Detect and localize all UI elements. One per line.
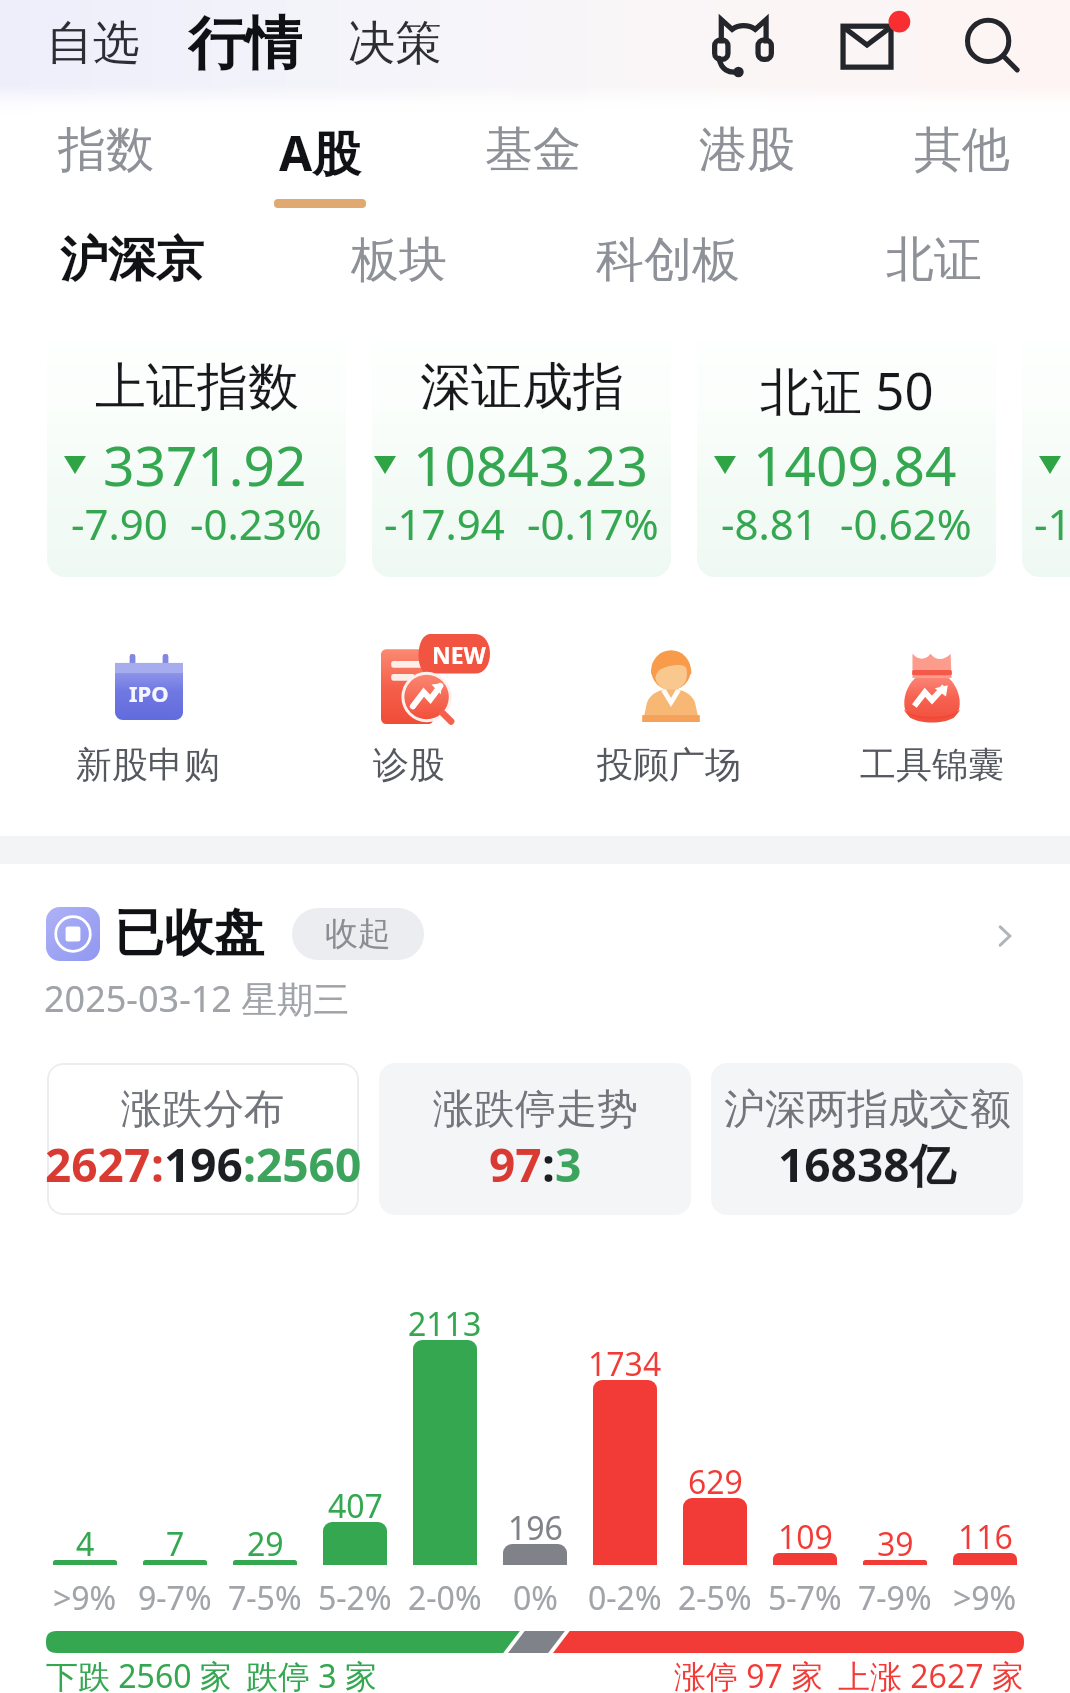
staticText: 2113	[408, 1302, 482, 1336]
button[interactable]	[47, 1063, 359, 1215]
button[interactable]: 板块	[314, 230, 484, 288]
staticText: 深证成指	[420, 355, 624, 419]
staticText: 5-7%	[768, 1576, 842, 1610]
staticText: 7-5%	[228, 1576, 302, 1610]
button[interactable]: 在线客服	[708, 8, 780, 78]
staticText: 沪深京	[60, 230, 204, 288]
staticText: 涨停 97 家	[674, 1654, 824, 1693]
staticText: :	[243, 1133, 256, 1196]
staticText: :	[542, 1133, 555, 1196]
staticText: 诊股	[373, 742, 445, 787]
button[interactable]: A股	[255, 120, 385, 230]
button[interactable]	[711, 1063, 1023, 1215]
staticText: 科创板	[596, 230, 740, 288]
staticText: 工具锦囊	[860, 742, 1004, 787]
button[interactable]: 收起	[292, 908, 424, 960]
staticText: 2-0%	[408, 1576, 482, 1610]
staticText: 29	[247, 1522, 284, 1556]
staticText: 9-7%	[138, 1576, 212, 1610]
staticText: 116	[958, 1515, 1013, 1549]
staticText: 新股申购	[76, 742, 220, 787]
button[interactable]: 创业板指	[1022, 329, 1070, 577]
staticText: 10843.23	[413, 427, 648, 502]
staticText: -0.17%	[527, 495, 659, 552]
staticText: 196	[164, 1133, 243, 1196]
staticText: 上证指数	[95, 355, 299, 419]
staticText: 109	[778, 1515, 833, 1549]
staticText: 2025-03-12 星期三	[44, 974, 350, 1023]
staticText: 5-2%	[318, 1576, 392, 1610]
staticText: -8.81	[721, 495, 818, 552]
staticText: 1734	[588, 1342, 662, 1376]
staticText: NEW	[432, 639, 486, 670]
staticText: 3371.92	[103, 427, 307, 502]
button[interactable]: 工具锦囊	[817, 634, 1047, 800]
button[interactable]: 上证指数	[47, 329, 346, 577]
staticText: 北证	[886, 230, 982, 288]
staticText: 港股	[699, 120, 795, 180]
staticText: 2-5%	[678, 1576, 752, 1610]
button[interactable]: 投顾广场	[554, 634, 784, 800]
staticText: 其他	[914, 120, 1010, 180]
staticText: >9%	[953, 1576, 1017, 1610]
staticText: 跌停 3 家	[246, 1654, 377, 1693]
staticText: 16838亿	[778, 1133, 956, 1196]
staticText: 投顾广场	[597, 742, 741, 787]
staticText: -13.21	[1034, 495, 1070, 552]
staticText: 沪深两指成交额	[724, 1084, 1011, 1136]
button[interactable]: 新股申购	[33, 634, 263, 800]
staticText: 0-2%	[588, 1576, 662, 1610]
staticText: 407	[328, 1484, 383, 1518]
button[interactable]: 港股	[682, 120, 812, 230]
staticText: 39	[877, 1522, 914, 1556]
staticText: 196	[508, 1506, 563, 1540]
staticText: 7	[166, 1522, 185, 1556]
staticText: 收起	[325, 913, 391, 955]
button[interactable]: 指数	[41, 120, 171, 230]
staticText: 4	[76, 1522, 95, 1556]
button[interactable]: 诊股	[294, 634, 524, 800]
staticText: 下跌 2560 家	[46, 1654, 232, 1693]
staticText: 0%	[513, 1576, 558, 1610]
staticText: >9%	[53, 1576, 117, 1610]
staticText: 已收盘	[114, 902, 264, 965]
staticText: 板块	[351, 230, 447, 288]
staticText: 1409.84	[753, 427, 957, 502]
staticText: -0.62%	[840, 495, 972, 552]
staticText: -0.23%	[190, 495, 322, 552]
staticText: :	[151, 1133, 164, 1196]
staticText: 2627	[45, 1133, 151, 1196]
button[interactable]: 深证成指	[372, 329, 671, 577]
button[interactable]: 决策	[348, 14, 442, 73]
staticText: 涨跌分布	[121, 1084, 285, 1136]
button[interactable]: 基金	[468, 120, 598, 230]
button[interactable]: 科创板	[583, 230, 753, 288]
staticText: -17.94	[384, 495, 505, 552]
staticText: 指数	[58, 120, 154, 180]
staticText: A股	[279, 120, 361, 186]
button[interactable]: 其他	[897, 120, 1027, 230]
staticText: 7-9%	[858, 1576, 932, 1610]
staticText: IPO	[129, 678, 169, 708]
staticText: 北证 50	[760, 355, 934, 425]
button[interactable]: 沪深京	[47, 230, 217, 288]
button[interactable]: 消息	[835, 8, 907, 78]
button[interactable]: 已收盘	[40, 900, 1030, 966]
staticText: 629	[688, 1460, 743, 1494]
staticText: 上涨 2627 家	[838, 1654, 1024, 1693]
staticText: 基金	[485, 120, 581, 180]
staticText: 97	[489, 1133, 542, 1196]
button[interactable]: 自选	[46, 14, 140, 73]
button[interactable]: 搜索	[957, 8, 1029, 78]
staticText: 2560	[256, 1133, 362, 1196]
staticText: 3	[555, 1133, 582, 1196]
staticText: -7.90	[71, 495, 168, 552]
button[interactable]: 北证 50	[697, 329, 996, 577]
button[interactable]: 更多	[985, 916, 1025, 956]
button[interactable]	[379, 1063, 691, 1215]
button[interactable]: 北证	[849, 230, 1019, 288]
staticText: 涨跌停走势	[433, 1084, 638, 1136]
button[interactable]: 行情	[188, 8, 302, 78]
